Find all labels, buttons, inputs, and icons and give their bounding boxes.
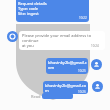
staticText: Please provide your email address to con… xyxy=(22,33,105,48)
staticText: Type: code xyxy=(18,6,39,11)
staticText: 10:25 xyxy=(78,69,86,73)
other: User avatar xyxy=(92,81,103,92)
button[interactable]: Please provide your email address to con… xyxy=(19,31,105,50)
staticText: Request details xyxy=(18,1,47,6)
button[interactable] xyxy=(42,93,73,99)
button[interactable]: Request details xyxy=(16,0,89,22)
button[interactable]: bhavinky2b@gmail.com xyxy=(43,81,88,94)
button[interactable]: bhavinky2b@gmail.com xyxy=(46,58,88,74)
other: User avatar xyxy=(91,59,102,70)
staticText: 10:24 xyxy=(91,44,99,48)
staticText: bhavinky2b@gmail.com xyxy=(45,83,88,93)
staticText: 10:26 xyxy=(78,90,86,94)
staticText: bhavinky2b@gmail.com xyxy=(48,60,88,70)
other: Support agent avatar xyxy=(7,31,18,42)
staticText: Site: ingest xyxy=(18,11,39,16)
staticText: Read xyxy=(31,94,41,99)
staticText: 10:22 xyxy=(79,16,87,20)
